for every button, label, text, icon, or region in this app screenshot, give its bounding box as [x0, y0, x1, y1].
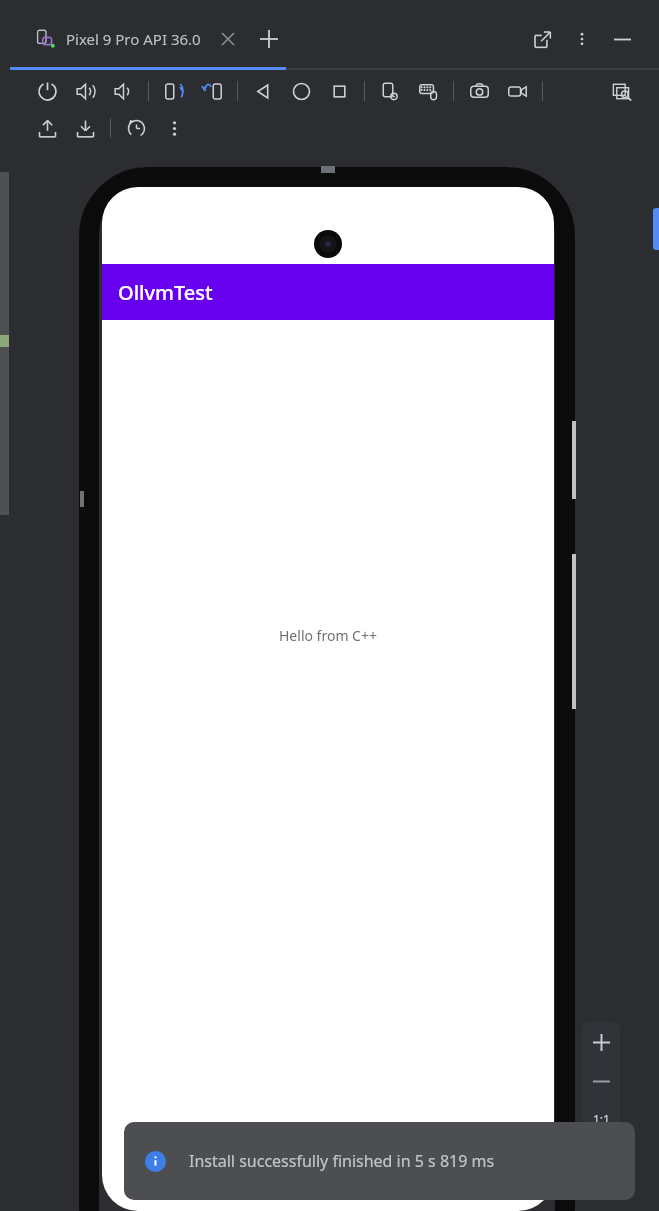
button[interactable]: Zoom in	[582, 1022, 620, 1062]
button[interactable]: Overview	[320, 74, 358, 108]
button[interactable]: Close tab	[215, 26, 241, 52]
button[interactable]: Minimize	[605, 22, 639, 56]
staticText: OllvmTest	[118, 279, 213, 306]
button[interactable]: History	[117, 111, 155, 145]
button[interactable]: Power	[28, 74, 66, 108]
button[interactable]: Screenshot	[460, 74, 498, 108]
staticText: Pixel 9 Pro API 36.0	[66, 29, 201, 49]
button[interactable]: Upload	[28, 111, 66, 145]
button[interactable]: Record screen	[498, 74, 536, 108]
button[interactable]: Device settings	[371, 74, 409, 108]
button[interactable]: Home	[282, 74, 320, 108]
button[interactable]: Rotate left	[155, 74, 193, 108]
button[interactable]: Zoom to actual size	[582, 1100, 620, 1138]
button[interactable]: Rotate right	[193, 74, 231, 108]
button[interactable]: New tab	[254, 24, 284, 54]
button[interactable]: More options	[567, 24, 597, 54]
button[interactable]: Download	[66, 111, 104, 145]
button[interactable]: Back	[244, 74, 282, 108]
button[interactable]: Volume up	[66, 74, 104, 108]
button[interactable]: Open in window	[525, 22, 559, 56]
button[interactable]: Zoom out	[582, 1062, 620, 1100]
staticText: Hello from C++	[279, 626, 377, 645]
button[interactable]: Install successfully finished in 5 s 819…	[124, 1122, 635, 1200]
button[interactable]: More	[155, 111, 193, 145]
button[interactable]: Volume down	[104, 74, 142, 108]
button[interactable]: Inspect	[603, 74, 641, 108]
button[interactable]: Keyboard and mouse	[409, 74, 447, 108]
button[interactable]: Pixel 9 Pro API 36.0	[32, 23, 205, 55]
staticText: 1:1	[593, 1111, 610, 1127]
staticText: Install successfully finished in 5 s 819…	[189, 1150, 495, 1172]
